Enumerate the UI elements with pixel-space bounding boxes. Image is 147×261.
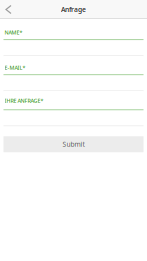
staticText: NAME* xyxy=(4,29,22,36)
button[interactable]: Submit xyxy=(0,136,147,152)
staticText: E-MAIL* xyxy=(4,64,25,71)
staticText: Submit xyxy=(62,140,84,149)
staticText: Anfrage xyxy=(61,5,86,14)
button[interactable]: Back xyxy=(0,1,15,17)
staticText: IHRE ANFRAGE* xyxy=(4,97,43,104)
